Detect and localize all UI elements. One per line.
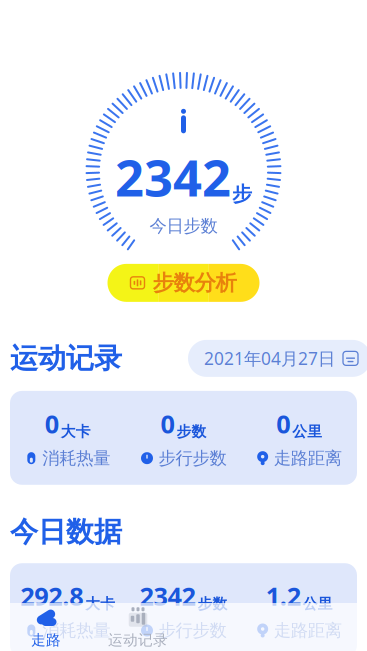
staticText: 2021年04月27日: [204, 347, 335, 370]
staticText: 走路距离: [274, 447, 342, 469]
staticText: 消耗热量: [42, 620, 110, 641]
staticText: 2342: [115, 143, 231, 210]
staticText: 0: [45, 407, 59, 440]
staticText: 步行步数: [158, 447, 226, 469]
staticText: 0: [160, 407, 174, 440]
staticText: 走路: [31, 631, 61, 649]
staticText: 消耗热量: [42, 447, 110, 469]
staticText: 步行步数: [158, 620, 226, 641]
staticText: 公里: [292, 422, 322, 440]
button[interactable]: 运动记录: [92, 603, 184, 651]
staticText: 0: [276, 407, 290, 440]
staticText: 步数: [197, 595, 227, 613]
staticText: 运动记录: [10, 341, 122, 376]
staticText: 走路距离: [274, 620, 342, 641]
staticText: 步数: [176, 422, 206, 440]
button[interactable]: 步数分析: [107, 264, 259, 302]
button[interactable]: 2021年04月27日: [188, 340, 367, 377]
staticText: 步: [232, 182, 252, 206]
button[interactable]: 走路: [0, 603, 92, 651]
staticText: 今日数据: [10, 515, 122, 549]
staticText: 292.8: [20, 579, 83, 613]
staticText: 1.2: [266, 579, 301, 613]
staticText: 大卡: [85, 595, 115, 613]
staticText: 运动记录: [108, 631, 168, 649]
staticText: 2342: [139, 579, 195, 613]
staticText: 步数分析: [152, 270, 236, 296]
staticText: 公里: [303, 595, 333, 613]
staticText: 大卡: [61, 422, 91, 440]
staticText: 今日步数: [149, 215, 217, 237]
